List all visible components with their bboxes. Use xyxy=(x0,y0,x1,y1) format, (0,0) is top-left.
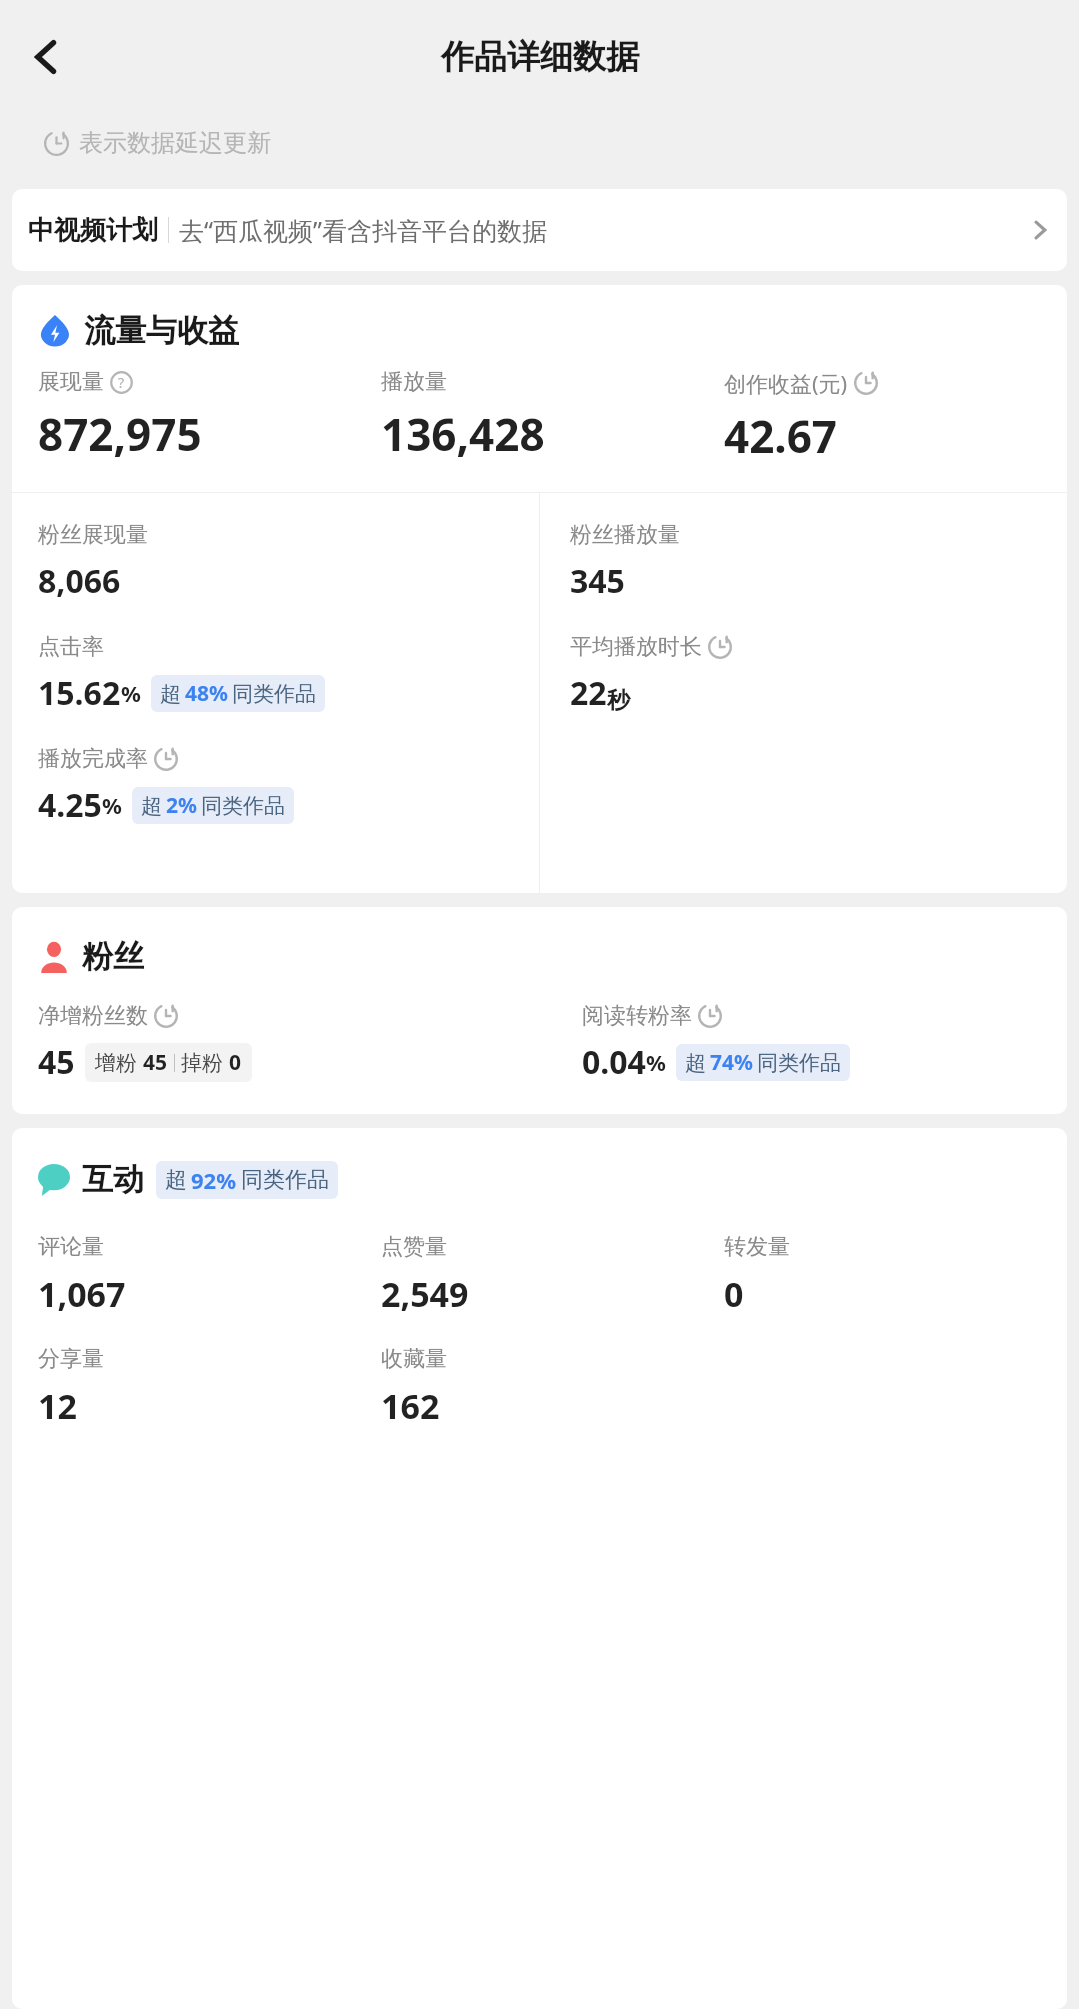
staticText: 播放完成率 xyxy=(38,745,148,773)
staticText: 同类作品 xyxy=(232,681,316,707)
staticText: 展现量 xyxy=(38,368,104,396)
staticText: % xyxy=(646,1047,666,1077)
staticText: 15.62 xyxy=(38,671,121,715)
staticText: 同类作品 xyxy=(241,1166,329,1194)
staticText: ? xyxy=(118,373,125,392)
staticText: 162 xyxy=(381,1383,440,1429)
staticText: 掉粉 xyxy=(181,1050,223,1076)
staticText: 22 xyxy=(570,671,607,715)
staticText: 1,067 xyxy=(38,1271,126,1317)
staticText: 创作收益(元) xyxy=(724,368,848,398)
staticText: 4.25 xyxy=(38,783,102,827)
staticText: 粉丝 xyxy=(82,937,144,976)
staticText: 超 xyxy=(160,681,181,707)
staticText: 45 xyxy=(38,1040,75,1084)
staticText: 136,428 xyxy=(381,404,545,464)
staticText: 0 xyxy=(724,1271,744,1317)
button[interactable]: Back xyxy=(14,25,78,89)
staticText: 收藏量 xyxy=(381,1345,447,1373)
staticText: 转发量 xyxy=(724,1233,790,1261)
staticText: 超 xyxy=(685,1050,706,1076)
staticText: 点击率 xyxy=(38,633,104,661)
staticText: 中视频计划 xyxy=(28,214,158,247)
staticText: 48% xyxy=(185,679,228,708)
staticText: 92% xyxy=(191,1165,237,1195)
staticText: 2,549 xyxy=(381,1271,469,1317)
staticText: 超 xyxy=(165,1166,187,1194)
staticText: 增粉 xyxy=(95,1050,137,1076)
staticText: 阅读转粉率 xyxy=(582,1002,692,1030)
staticText: 74% xyxy=(710,1048,753,1077)
staticText: 分享量 xyxy=(38,1345,104,1373)
staticText: 872,975 xyxy=(38,404,202,464)
staticText: 去“西瓜视频”看含抖音平台的数据 xyxy=(179,213,1029,247)
staticText: 表示数据延迟更新 xyxy=(79,128,271,158)
staticText: 345 xyxy=(570,559,625,603)
staticText: 2% xyxy=(166,791,197,820)
staticText: 粉丝展现量 xyxy=(38,521,148,549)
staticText: 0 xyxy=(229,1048,242,1077)
staticText: % xyxy=(121,678,141,708)
staticText: 平均播放时长 xyxy=(570,633,702,661)
staticText: 点赞量 xyxy=(381,1233,447,1261)
staticText: 播放量 xyxy=(381,368,447,396)
staticText: 同类作品 xyxy=(757,1050,841,1076)
staticText: % xyxy=(102,790,122,820)
staticText: 42.67 xyxy=(724,406,838,466)
staticText: 12 xyxy=(38,1383,77,1429)
staticText: 净增粉丝数 xyxy=(38,1002,148,1030)
staticText: 流量与收益 xyxy=(84,311,239,350)
staticText: 互动 xyxy=(82,1160,144,1199)
staticText: 超 xyxy=(141,793,162,819)
staticText: 作品详细数据 xyxy=(441,36,639,78)
staticText: 同类作品 xyxy=(201,793,285,819)
staticText: 秒 xyxy=(607,686,630,715)
button[interactable]: 中视频计划 xyxy=(12,189,1067,271)
staticText: 评论量 xyxy=(38,1233,104,1261)
staticText: 0.04 xyxy=(582,1040,646,1084)
staticText: 8,066 xyxy=(38,559,121,603)
staticText: 45 xyxy=(143,1048,168,1077)
staticText: 粉丝播放量 xyxy=(570,521,680,549)
